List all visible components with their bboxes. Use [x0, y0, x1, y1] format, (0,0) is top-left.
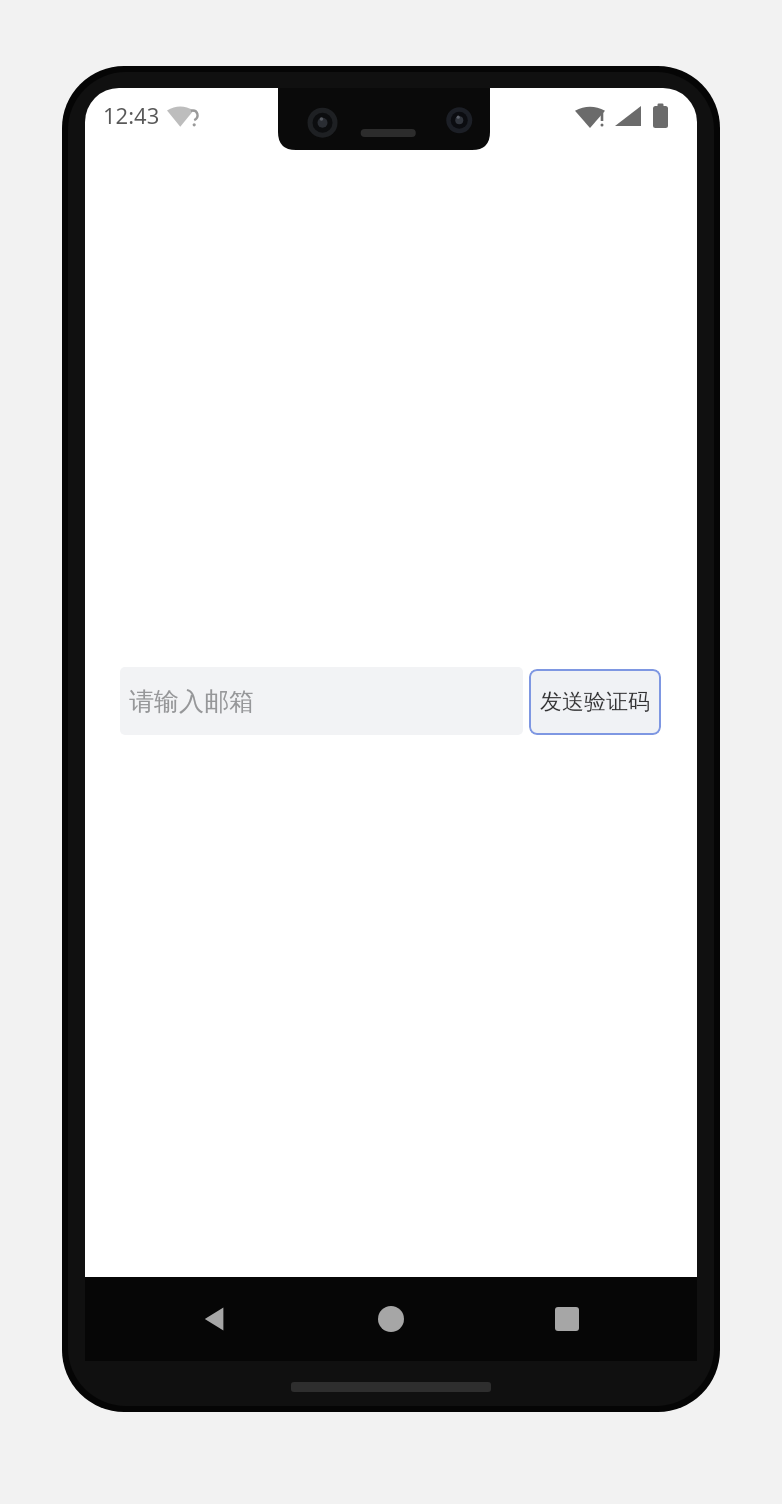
button[interactable]: Back [173, 1277, 257, 1361]
button[interactable]: 发送验证码 [529, 669, 661, 735]
button[interactable]: Home [349, 1277, 433, 1361]
staticText: 12:43 [103, 100, 160, 130]
staticText: 请输入邮箱 [129, 686, 254, 717]
button[interactable]: 请输入邮箱 [120, 667, 523, 735]
button[interactable]: Recent apps [525, 1277, 609, 1361]
staticText: 发送验证码 [540, 688, 650, 716]
